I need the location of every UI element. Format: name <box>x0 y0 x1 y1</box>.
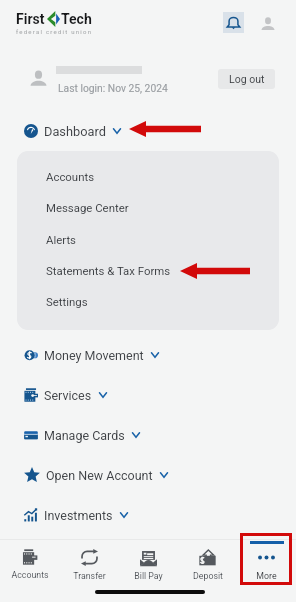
staticText: Dashboard <box>44 124 106 139</box>
staticText: Services <box>44 388 92 403</box>
button[interactable]: Services <box>0 379 296 411</box>
staticText: Last login: Nov 25, 2024 <box>58 82 168 94</box>
staticText: Deposit <box>193 571 223 581</box>
staticText: Manage Cards <box>44 428 125 443</box>
button[interactable]: Dashboard <box>0 121 296 141</box>
button[interactable]: Notifications <box>223 12 244 33</box>
staticText: Bill Pay <box>134 571 163 581</box>
staticText: Investments <box>44 508 113 523</box>
button[interactable]: Accounts <box>0 540 60 580</box>
staticText: More <box>256 571 277 581</box>
staticText: Tech <box>61 11 92 27</box>
button[interactable]: Deposit <box>178 540 237 581</box>
staticText: Alerts <box>46 233 76 246</box>
staticText: Settings <box>46 295 88 308</box>
button[interactable]: Message Center <box>17 192 279 223</box>
staticText: Accounts <box>46 170 95 183</box>
staticText: Log out <box>229 73 265 85</box>
button[interactable]: Alerts <box>17 224 279 255</box>
button[interactable]: Money Movement <box>0 339 296 371</box>
button[interactable]: Statements & Tax Forms <box>17 255 279 286</box>
staticText: Open New Account <box>46 468 153 483</box>
staticText: Transfer <box>73 571 106 581</box>
button[interactable]: Investments <box>0 499 296 531</box>
button[interactable]: Profile <box>258 14 278 34</box>
button[interactable]: Accounts <box>17 161 279 192</box>
staticText: Message Center <box>46 201 129 214</box>
staticText: Accounts <box>11 570 49 580</box>
staticText: Statements & Tax Forms <box>46 264 171 277</box>
button[interactable]: Open New Account <box>0 459 296 491</box>
staticText: federal credit union <box>16 28 93 35</box>
button[interactable]: More <box>237 540 296 581</box>
button[interactable]: Log out <box>218 69 275 89</box>
staticText: First <box>16 11 45 27</box>
button[interactable]: Settings <box>17 286 279 317</box>
button[interactable]: Transfer <box>60 540 119 581</box>
button[interactable]: Manage Cards <box>0 419 296 451</box>
button[interactable]: Bill Pay <box>119 540 178 581</box>
staticText: Money Movement <box>44 348 144 363</box>
